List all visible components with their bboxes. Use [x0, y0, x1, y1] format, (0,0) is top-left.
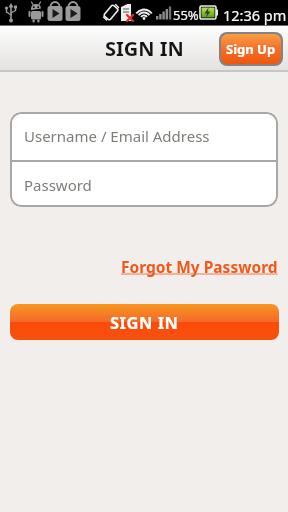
button[interactable]: Password [10, 162, 278, 207]
button[interactable]: Sign Up [221, 34, 281, 64]
button[interactable]: SIGN IN [10, 304, 279, 340]
staticText: 12:36 pm [223, 5, 287, 25]
staticText: Password [24, 175, 92, 195]
staticText: SIGN IN [105, 35, 184, 62]
staticText: SIGN IN [110, 311, 179, 333]
staticText: Sign Up [226, 40, 276, 58]
staticText: 55% [173, 6, 199, 24]
staticText: Username / Email Address [24, 126, 210, 146]
button[interactable]: Username / Email Address [10, 112, 278, 160]
button[interactable]: Forgot My Password [121, 256, 278, 277]
staticText: Forgot My Password [121, 256, 278, 277]
